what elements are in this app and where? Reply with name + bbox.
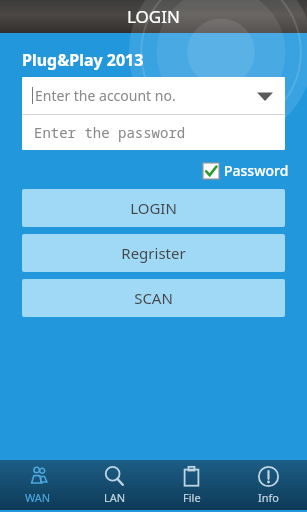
staticText: Plug&Play 2013 xyxy=(22,49,144,71)
staticText: SCAN xyxy=(134,288,173,308)
button[interactable]: Enter the password xyxy=(22,115,285,150)
staticText: LAN xyxy=(104,490,126,505)
staticText: Enter the account no. xyxy=(35,86,257,105)
staticText: File xyxy=(183,490,201,505)
button[interactable]: WAN xyxy=(0,460,76,510)
staticText: Regrister xyxy=(121,243,186,263)
button[interactable]: Enter the account no. xyxy=(22,77,285,114)
button[interactable]: SCAN xyxy=(22,279,285,317)
staticText: LOGIN xyxy=(127,5,180,28)
button[interactable]: LAN xyxy=(76,460,153,510)
staticText: Enter the password xyxy=(34,123,186,142)
staticText: WAN xyxy=(25,490,51,505)
staticText: LOGIN xyxy=(130,198,177,218)
staticText: Password xyxy=(224,161,289,180)
button[interactable]: File xyxy=(153,460,230,510)
button[interactable]: Regrister xyxy=(22,234,285,272)
button[interactable]: Info xyxy=(230,460,307,510)
staticText: Info xyxy=(258,490,279,505)
button[interactable]: LOGIN xyxy=(22,189,285,227)
button[interactable]: Password xyxy=(203,161,289,180)
